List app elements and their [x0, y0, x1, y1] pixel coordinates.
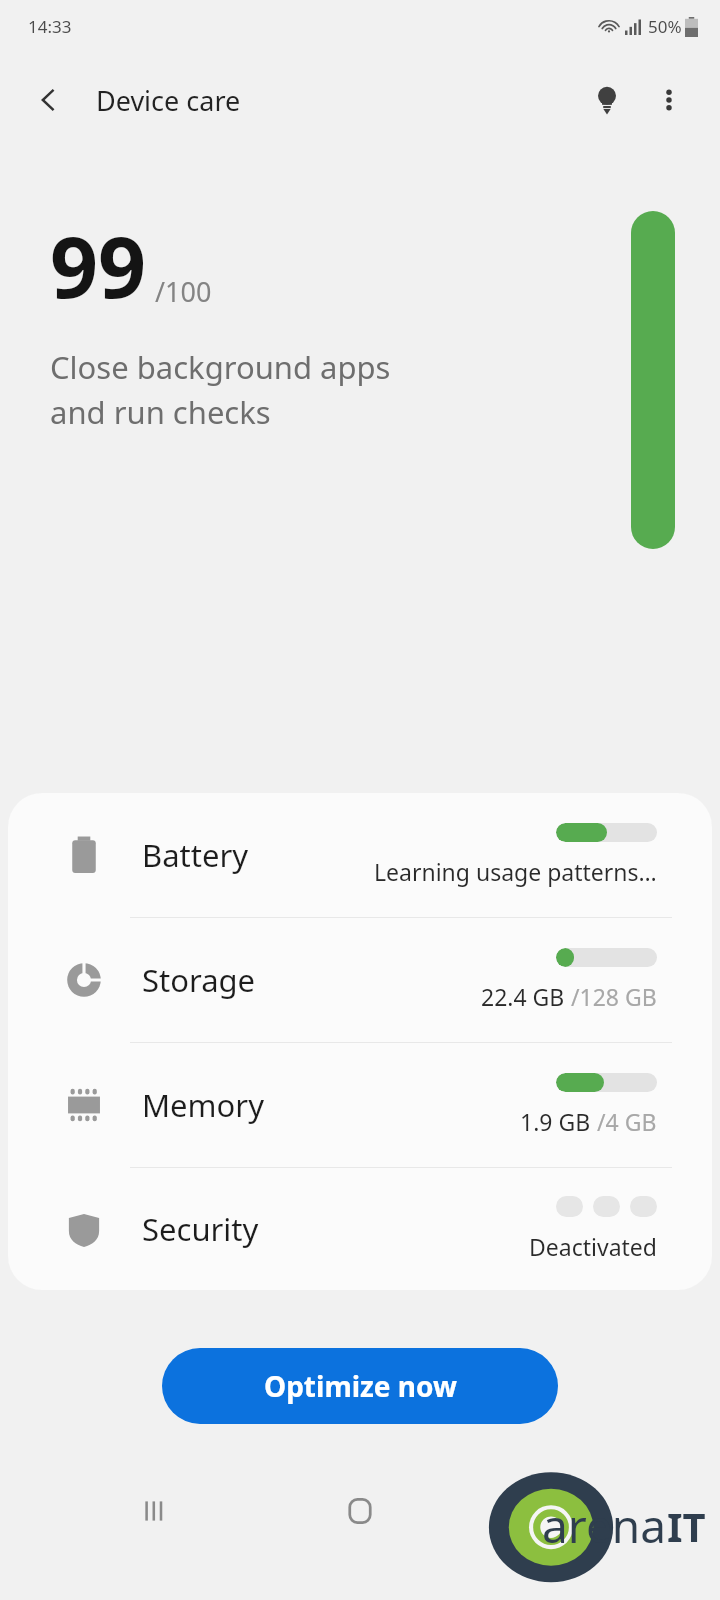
staticText: 1.9 GB: [520, 1106, 597, 1137]
button[interactable]: Battery: [8, 793, 712, 917]
staticText: 14:33: [28, 15, 72, 38]
staticText: Memory: [142, 1084, 264, 1126]
button[interactable]: Back: [24, 76, 72, 124]
staticText: Battery: [142, 834, 249, 876]
staticText: 99: [50, 208, 147, 322]
staticText: Security: [142, 1208, 259, 1250]
button[interactable]: More options: [638, 69, 700, 131]
staticText: /4 GB: [597, 1106, 657, 1137]
button[interactable]: Recent apps: [110, 1466, 200, 1556]
staticText: Device care: [96, 82, 241, 119]
button[interactable]: Tips: [576, 69, 638, 131]
button[interactable]: Security: [8, 1168, 712, 1290]
staticText: /128 GB: [571, 981, 657, 1012]
staticText: Deactivated: [529, 1231, 657, 1262]
staticText: Close background apps and run checks: [50, 346, 391, 433]
staticText: 22.4 GB: [481, 981, 571, 1012]
button[interactable]: Home: [315, 1466, 405, 1556]
button[interactable]: Optimize now: [162, 1348, 558, 1424]
staticText: Optimize now: [264, 1367, 457, 1405]
staticText: /100: [155, 273, 212, 310]
button[interactable]: Memory: [8, 1043, 712, 1167]
button[interactable]: Storage: [8, 918, 712, 1042]
staticText: 50%: [648, 15, 682, 38]
staticText: arena: [542, 1494, 667, 1557]
staticText: Learning usage patterns…: [374, 856, 657, 887]
staticText: Storage: [142, 959, 256, 1001]
staticText: IT: [667, 1499, 706, 1553]
